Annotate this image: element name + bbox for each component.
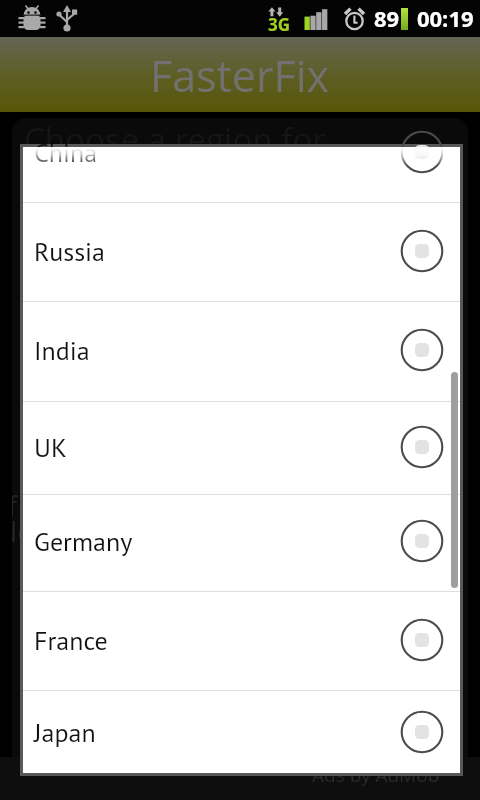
button[interactable]: Russia: [23, 203, 460, 302]
button[interactable]: UK: [23, 402, 460, 495]
staticText: 3G: [268, 13, 291, 36]
staticText: 00:19: [417, 3, 474, 33]
staticText: Germany: [34, 525, 399, 559]
staticText: Ads by AdMob: [312, 762, 440, 788]
other: USB connected: [52, 3, 82, 33]
staticText: 89: [374, 3, 400, 33]
button[interactable]: Germany: [23, 494, 460, 592]
staticText: FasterFix: [150, 46, 330, 105]
button[interactable]: Japan: [23, 691, 460, 776]
staticText: Choose a region for: [24, 118, 326, 162]
staticText: de: [12, 512, 33, 550]
button[interactable]: India: [23, 302, 460, 402]
staticText: UK: [34, 431, 399, 465]
button[interactable]: France: [23, 592, 460, 691]
staticText: If: [12, 486, 18, 524]
staticText: Russia: [34, 235, 399, 269]
staticText: Japan: [34, 716, 399, 750]
staticText: t: [24, 161, 36, 206]
staticText: China: [34, 136, 399, 170]
other: USB debugging: [17, 4, 47, 34]
staticText: France: [34, 624, 399, 658]
button[interactable]: China: [23, 105, 460, 203]
staticText: India: [34, 334, 399, 368]
